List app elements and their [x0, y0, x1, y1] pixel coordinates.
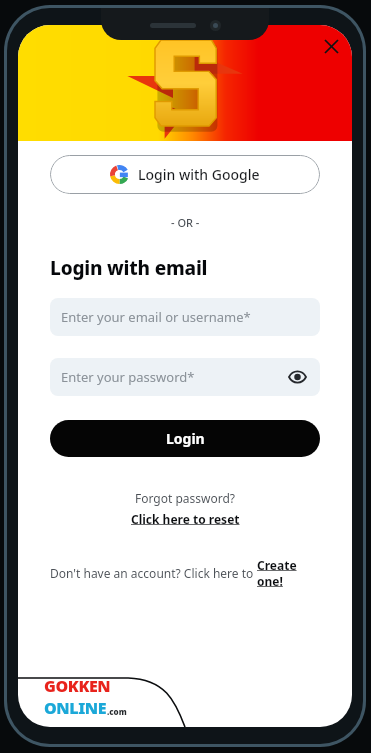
button[interactable]: Close	[318, 33, 344, 59]
staticText: - OR -	[171, 215, 200, 230]
button[interactable]: Enter your email or username*	[50, 298, 320, 336]
staticText: ONLINE	[44, 697, 107, 719]
staticText: Don't have an account? Click here to	[50, 565, 257, 581]
staticText: .com	[107, 706, 127, 717]
staticText: Enter your password*	[61, 368, 195, 386]
staticText: Create one!	[257, 557, 320, 589]
button[interactable]: Show password	[285, 365, 309, 389]
button[interactable]: Enter your password*	[50, 358, 320, 396]
button[interactable]: Login with Google	[50, 155, 320, 194]
button[interactable]: Login	[50, 420, 320, 457]
button[interactable]: Click here to reset	[131, 511, 240, 527]
staticText: Login with Google	[138, 165, 260, 184]
staticText: Click here to reset	[131, 511, 240, 527]
staticText: Enter your email or username*	[61, 308, 251, 326]
staticText: Forgot password?	[135, 490, 236, 506]
staticText: Login with email	[50, 255, 208, 281]
staticText: Login	[166, 429, 205, 448]
button[interactable]: Create one!	[257, 557, 320, 589]
staticText: GOKKEN	[44, 675, 111, 697]
